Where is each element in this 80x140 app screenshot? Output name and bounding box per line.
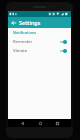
staticText: Reminder [13, 39, 60, 45]
button[interactable]: Back [18, 119, 26, 127]
staticText: Notifications [13, 30, 37, 35]
button[interactable]: Home [36, 119, 44, 127]
button[interactable]: Navigate up [8, 17, 19, 28]
staticText: Settings [19, 19, 41, 26]
button[interactable]: Reminder [8, 37, 71, 46]
button[interactable]: Vibrate [8, 46, 71, 55]
button[interactable]: Recent apps [53, 119, 61, 127]
staticText: Vibrate [13, 48, 60, 54]
